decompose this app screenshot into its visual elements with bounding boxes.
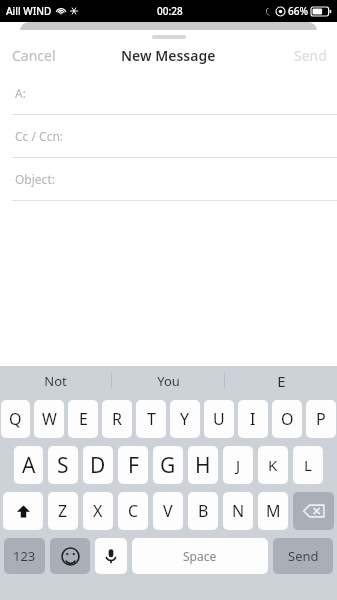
staticText: Q — [9, 408, 22, 430]
staticText: V — [163, 500, 173, 522]
button[interactable]: W — [34, 400, 64, 438]
button[interactable]: H — [188, 446, 218, 484]
staticText: A: — [15, 85, 26, 101]
staticText: U — [213, 408, 225, 430]
button[interactable]: Q — [1, 400, 30, 438]
button[interactable]: X — [83, 492, 113, 530]
button[interactable]: B — [188, 492, 218, 530]
button[interactable]: M — [258, 492, 288, 530]
button[interactable]: Send — [290, 42, 331, 69]
button[interactable]: Shift — [3, 492, 43, 530]
staticText: X — [93, 500, 103, 522]
button[interactable]: F — [118, 446, 148, 484]
staticText: 00:28 — [157, 4, 183, 18]
button[interactable]: K — [258, 446, 288, 484]
staticText: S — [57, 451, 69, 480]
button[interactable]: A — [14, 446, 43, 484]
button[interactable]: L — [293, 446, 323, 484]
button[interactable]: You — [112, 366, 224, 396]
button[interactable]: Cancel — [8, 42, 60, 69]
button[interactable]: E — [68, 400, 98, 438]
staticText: 123 — [13, 547, 36, 565]
staticText: New Message — [121, 46, 216, 65]
staticText: L — [304, 455, 312, 475]
staticText: 66% — [288, 4, 308, 18]
staticText: J — [236, 455, 241, 475]
staticText: Y — [180, 408, 190, 430]
staticText: H — [195, 451, 211, 480]
staticText: K — [268, 455, 278, 475]
staticText: D — [90, 451, 106, 480]
staticText: Space — [183, 548, 217, 564]
staticText: You — [157, 372, 180, 390]
button[interactable]: 123 — [4, 538, 45, 574]
button[interactable]: Send — [273, 538, 333, 574]
button[interactable]: D — [83, 446, 113, 484]
staticText: Cancel — [12, 46, 56, 65]
staticText: Object: — [15, 171, 55, 187]
button[interactable]: Space — [132, 538, 268, 574]
staticText: I — [250, 408, 256, 430]
button[interactable]: R — [102, 400, 132, 438]
button[interactable]: Cc / Ccn: — [0, 115, 337, 158]
staticText: Z — [58, 500, 68, 522]
staticText: P — [316, 408, 326, 430]
staticText: Send — [294, 46, 327, 65]
staticText: E — [277, 371, 286, 391]
staticText: Cc / Ccn: — [15, 128, 64, 144]
button[interactable]: O — [272, 400, 302, 438]
staticText: Not — [44, 372, 67, 390]
button[interactable]: J — [223, 446, 253, 484]
staticText: E — [79, 408, 88, 430]
staticText: C — [128, 500, 139, 522]
button[interactable]: T — [136, 400, 166, 438]
staticText: Send — [288, 547, 319, 565]
staticText: B — [198, 500, 209, 522]
button[interactable]: Backspace — [293, 492, 334, 530]
button[interactable]: Not — [0, 366, 111, 396]
button[interactable]: N — [223, 492, 253, 530]
staticText: M — [266, 500, 281, 522]
button[interactable]: U — [204, 400, 234, 438]
staticText: A — [22, 451, 36, 480]
button[interactable]: V — [153, 492, 183, 530]
staticText: Aill WIND — [6, 4, 52, 18]
staticText: O — [281, 408, 294, 430]
button[interactable]: C — [118, 492, 148, 530]
staticText: F — [128, 451, 139, 480]
staticText: G — [160, 451, 176, 480]
staticText: R — [112, 408, 122, 430]
button[interactable]: P — [306, 400, 336, 438]
button[interactable]: Object: — [0, 158, 337, 201]
button[interactable]: G — [153, 446, 183, 484]
button[interactable]: E — [225, 366, 337, 396]
button[interactable]: Emoji — [50, 538, 90, 574]
button[interactable]: A: — [0, 72, 337, 115]
staticText: T — [147, 408, 156, 430]
button[interactable]: S — [48, 446, 78, 484]
staticText: N — [232, 500, 245, 522]
staticText: W — [42, 408, 57, 430]
button[interactable]: I — [238, 400, 268, 438]
button[interactable]: Y — [170, 400, 200, 438]
button[interactable]: Z — [48, 492, 78, 530]
button[interactable]: Voice input — [95, 538, 127, 574]
